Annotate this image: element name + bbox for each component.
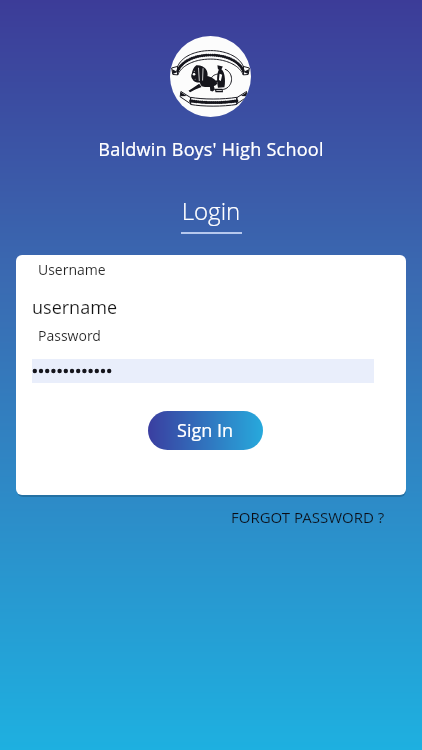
staticText: Login bbox=[0, 194, 422, 227]
button[interactable]: FORGOT PASSWORD ? bbox=[231, 507, 385, 527]
staticText: username bbox=[32, 295, 117, 320]
staticText: Baldwin Boys' High School bbox=[0, 137, 422, 162]
staticText: Password bbox=[38, 326, 101, 345]
staticText: Username bbox=[38, 260, 106, 279]
staticText: Sign In bbox=[177, 418, 234, 443]
staticText: FORGOT PASSWORD ? bbox=[231, 507, 385, 527]
button[interactable] bbox=[32, 359, 374, 383]
button[interactable]: Sign In bbox=[148, 411, 263, 450]
